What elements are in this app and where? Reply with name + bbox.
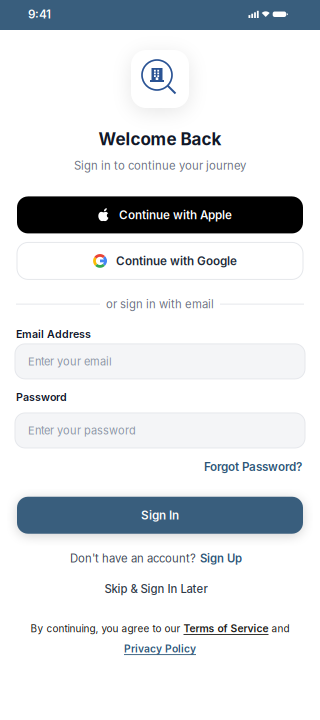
staticText: Sign In <box>141 508 179 522</box>
staticText: Sign in to continue your journey <box>74 159 246 172</box>
staticText: Enter your email <box>28 355 112 368</box>
staticText: Forgot Password? <box>204 460 302 474</box>
button[interactable]: Forgot Password? <box>204 460 302 474</box>
staticText: Don't have an account? <box>70 552 196 565</box>
staticText: Welcome Back <box>98 129 221 149</box>
button[interactable]: Sign Up <box>200 552 242 565</box>
staticText: Privacy Policy <box>124 643 196 655</box>
staticText: Continue with Apple <box>119 208 232 222</box>
button[interactable]: Privacy Policy <box>124 643 196 655</box>
staticText: Email Address <box>16 328 91 340</box>
button[interactable]: Continue with Apple <box>17 196 303 233</box>
button[interactable]: Enter your email <box>15 344 305 379</box>
staticText: or sign in with email <box>106 297 214 311</box>
staticText: Password <box>16 391 67 403</box>
staticText: Sign Up <box>200 552 242 565</box>
staticText: By continuing, you agree to our Terms of… <box>30 622 289 635</box>
staticText: Continue with Google <box>116 254 237 268</box>
staticText: 9:41 <box>28 7 51 21</box>
staticText: Skip & Sign In Later <box>104 582 207 595</box>
button[interactable]: Sign In <box>17 497 303 534</box>
staticText: Enter your password <box>28 424 136 437</box>
button[interactable]: Continue with Google <box>17 242 303 279</box>
button[interactable]: By continuing, you agree to our Terms of… <box>30 622 289 635</box>
button[interactable]: Enter your password <box>15 413 305 448</box>
button[interactable]: Skip & Sign In Later <box>104 582 207 595</box>
